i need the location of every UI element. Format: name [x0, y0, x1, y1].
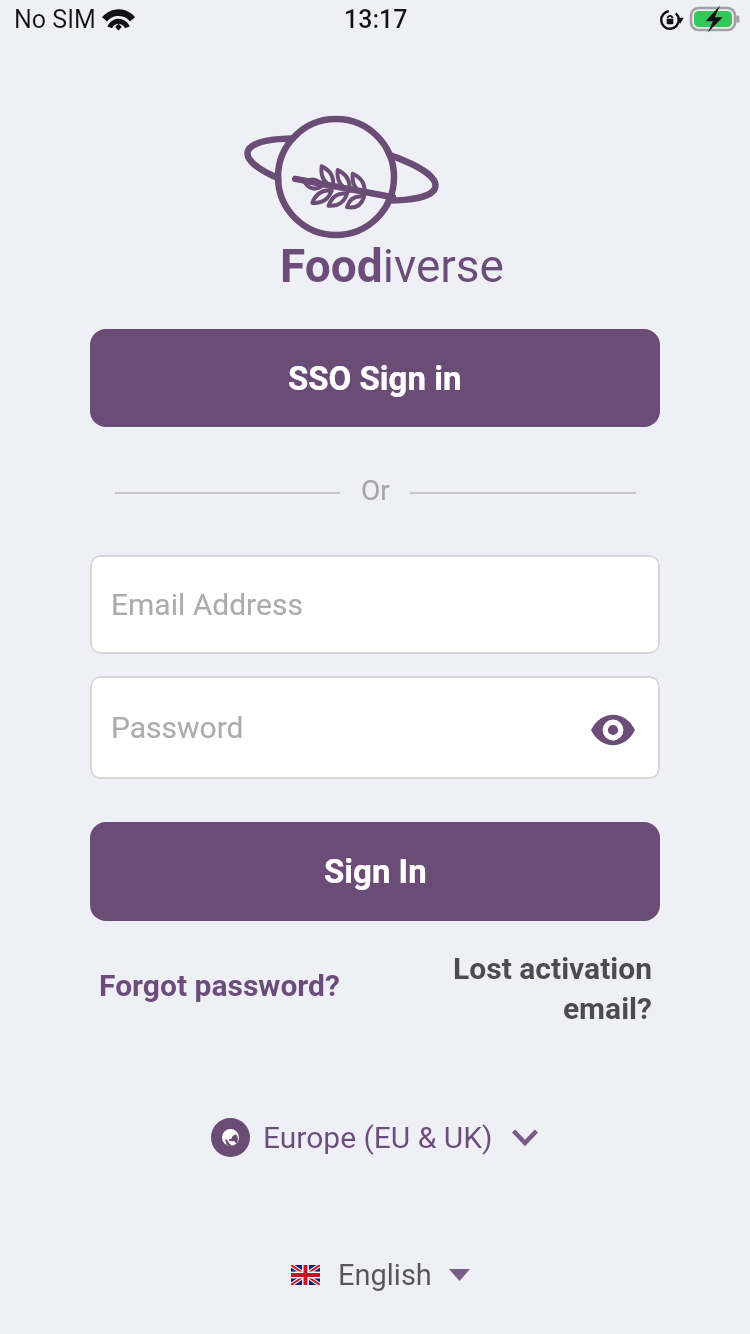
- staticText: Sign In: [324, 852, 427, 891]
- button[interactable]: Sign In: [90, 822, 660, 921]
- button[interactable]: Forgot password?: [99, 968, 340, 1003]
- other: Rotation lock: [660, 8, 684, 31]
- staticText: 13:17: [344, 5, 408, 34]
- staticText: Email Address: [111, 587, 303, 622]
- staticText: Lost activation email?: [380, 951, 652, 1026]
- button[interactable]: Show password: [588, 705, 638, 755]
- staticText: Forgot password?: [99, 968, 340, 1003]
- button[interactable]: Email Address: [90, 555, 660, 654]
- other: Battery charging: [691, 8, 738, 30]
- staticText: Or: [361, 474, 390, 507]
- staticText: Foodiverse: [280, 239, 505, 293]
- button[interactable]: Password: [90, 676, 660, 779]
- staticText: Password: [111, 710, 244, 745]
- other: United Kingdom flag: [291, 1265, 320, 1285]
- staticText: English: [338, 1258, 432, 1292]
- button[interactable]: SSO Sign in: [90, 329, 660, 427]
- staticText: SSO Sign in: [288, 359, 462, 398]
- staticText: No SIM: [14, 5, 96, 34]
- button[interactable]: Europe (EU & UK): [211, 1112, 537, 1162]
- staticText: Europe (EU & UK): [263, 1120, 493, 1155]
- button[interactable]: Lost activation email?: [380, 951, 652, 1026]
- button[interactable]: United Kingdom flag: [291, 1250, 470, 1300]
- other: Wi-Fi: [104, 9, 133, 31]
